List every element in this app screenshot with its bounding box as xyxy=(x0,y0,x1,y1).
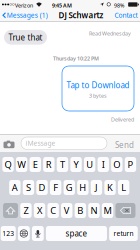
button[interactable]: P xyxy=(125,157,136,172)
staticText: Tap to Download xyxy=(66,80,129,90)
staticText: Messages (1) xyxy=(7,11,48,20)
button[interactable]: Shift xyxy=(3,203,18,218)
staticText: Q xyxy=(4,158,11,171)
staticText: Read Wednesday xyxy=(89,30,131,37)
staticText: D xyxy=(38,181,45,194)
staticText: iMessage xyxy=(25,139,55,148)
staticText: K xyxy=(107,181,113,194)
staticText: S xyxy=(26,181,31,194)
button[interactable]: M xyxy=(102,203,113,218)
button[interactable]: X xyxy=(34,203,45,218)
staticText: A xyxy=(12,181,18,194)
staticText: return xyxy=(113,229,133,238)
staticText: B xyxy=(77,204,83,217)
staticText: 98% xyxy=(114,2,124,9)
button[interactable]: R xyxy=(43,157,54,172)
staticText: Verizon xyxy=(15,2,33,9)
staticText: Send xyxy=(115,139,134,150)
button[interactable]: Messages (1) xyxy=(2,11,48,20)
staticText: X xyxy=(37,204,42,217)
button[interactable]: K xyxy=(104,180,116,195)
button[interactable]: G xyxy=(63,180,75,195)
staticText: N xyxy=(90,204,97,217)
button[interactable]: W xyxy=(16,157,27,172)
staticText: 3 bytes xyxy=(89,92,107,99)
staticText: Z xyxy=(23,204,28,217)
staticText: P xyxy=(127,158,133,171)
button[interactable]: V xyxy=(61,203,72,218)
button[interactable]: Send xyxy=(115,139,134,150)
button[interactable]: space xyxy=(46,226,107,241)
button[interactable]: D xyxy=(36,180,48,195)
button[interactable]: E xyxy=(29,157,41,172)
staticText: DJ Schwartz xyxy=(59,10,104,20)
button[interactable]: N xyxy=(88,203,100,218)
button[interactable]: T xyxy=(57,157,68,172)
staticText: 123 xyxy=(2,229,14,238)
staticText: T xyxy=(60,158,65,171)
button[interactable]: A xyxy=(9,180,20,195)
button[interactable]: S xyxy=(23,180,34,195)
staticText: Y xyxy=(73,158,78,171)
button[interactable]: Delete xyxy=(115,203,135,218)
button[interactable]: F xyxy=(50,180,61,195)
button[interactable]: Q xyxy=(2,157,14,172)
staticText: U xyxy=(86,158,93,171)
staticText: 9:45 AM xyxy=(52,2,72,9)
staticText: L xyxy=(121,181,126,194)
staticText: space xyxy=(65,228,87,239)
button[interactable]: O xyxy=(111,157,122,172)
button[interactable]: Contact xyxy=(114,11,137,20)
staticText: True that xyxy=(8,32,42,43)
button[interactable]: Z xyxy=(20,203,32,218)
staticText: J xyxy=(95,181,98,194)
button[interactable]: B xyxy=(75,203,86,218)
button[interactable]: Next keyboard xyxy=(18,226,30,241)
button[interactable]: J xyxy=(91,180,102,195)
staticText: I xyxy=(102,158,105,171)
staticText: V xyxy=(64,204,70,217)
button[interactable]: return xyxy=(109,226,138,241)
button[interactable]: I xyxy=(97,157,109,172)
button[interactable]: U xyxy=(84,157,95,172)
staticText: M xyxy=(104,204,112,217)
button[interactable]: Y xyxy=(70,157,82,172)
staticText: C xyxy=(50,204,56,217)
staticText: F xyxy=(53,181,58,194)
staticText: Thursday 10:22 PM xyxy=(53,55,99,62)
button[interactable]: 123 xyxy=(1,226,16,241)
staticText: Delivered xyxy=(111,116,134,123)
staticText: W xyxy=(17,158,26,171)
button[interactable]: C xyxy=(47,203,59,218)
button[interactable]: H xyxy=(77,180,88,195)
staticText: R xyxy=(46,158,52,171)
staticText: E xyxy=(33,158,38,171)
button[interactable]: Dictation xyxy=(32,226,44,241)
button[interactable]: L xyxy=(118,180,129,195)
staticText: Contact xyxy=(114,11,137,20)
staticText: O xyxy=(113,158,120,171)
button[interactable]: Camera xyxy=(3,139,14,147)
staticText: H xyxy=(79,181,86,194)
staticText: G xyxy=(66,181,73,194)
